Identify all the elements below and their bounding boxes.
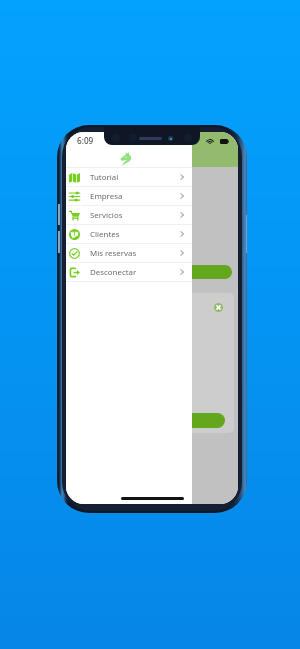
staticText: Tutorial	[90, 172, 119, 183]
button[interactable]	[77, 413, 225, 428]
button[interactable]: Clientes	[66, 225, 192, 243]
staticText: Empresa	[90, 191, 123, 202]
staticText: 6:09	[77, 135, 94, 146]
button[interactable]: Empresa	[66, 187, 192, 205]
staticText: Servicios	[90, 210, 123, 221]
button[interactable]: Mis reservas	[66, 244, 192, 262]
button[interactable]: Cerrar	[214, 303, 223, 312]
staticText: Desconectar	[90, 267, 137, 278]
button[interactable]: Tutorial	[66, 168, 192, 186]
button[interactable]: Servicios	[66, 206, 192, 224]
staticText: Mis reservas	[90, 248, 137, 259]
button[interactable]: Desconectar	[66, 263, 192, 281]
staticText: Clientes	[90, 229, 120, 240]
button[interactable]	[76, 265, 232, 279]
